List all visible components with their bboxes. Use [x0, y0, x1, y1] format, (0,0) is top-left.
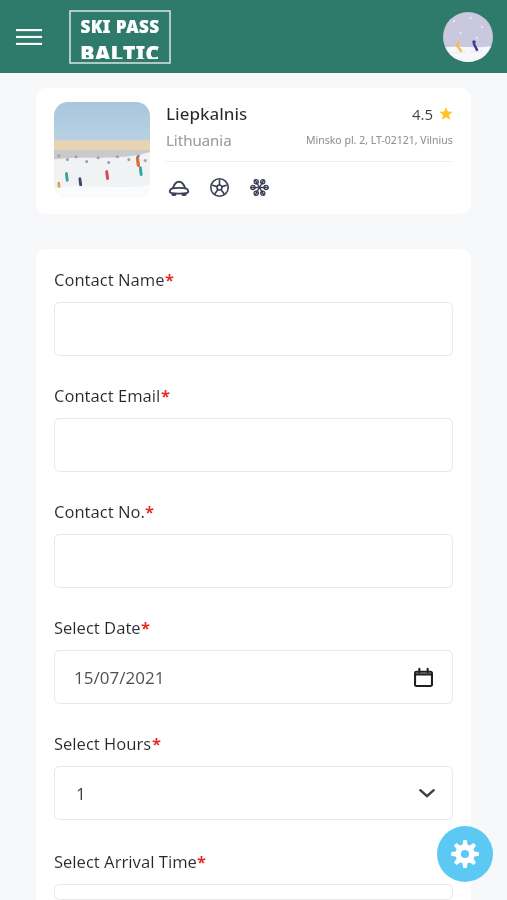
button[interactable]: Snow making	[246, 174, 272, 200]
staticText: Lithuania	[166, 130, 232, 150]
staticText: *	[161, 384, 170, 406]
staticText: *	[145, 500, 154, 522]
staticText: SKI PASS	[80, 15, 160, 38]
button[interactable]	[54, 534, 453, 588]
staticText: *	[197, 850, 206, 872]
staticText: *	[152, 732, 161, 754]
button[interactable]: Equipment rental	[206, 174, 232, 200]
staticText: Contact No.	[54, 500, 145, 522]
staticText: 15/07/2021	[74, 666, 165, 689]
button[interactable]	[54, 302, 453, 356]
button[interactable]: Settings	[437, 826, 493, 882]
button[interactable]: 1	[54, 766, 453, 820]
staticText: *	[165, 268, 174, 290]
button[interactable]: Parking	[166, 174, 192, 200]
button[interactable]: Ski Pass Baltics home	[70, 11, 170, 63]
staticText: Liepkalnis	[166, 102, 248, 125]
button[interactable]: 15/07/2021	[54, 650, 453, 704]
staticText: 1	[76, 782, 86, 805]
button[interactable]	[54, 884, 453, 900]
staticText: Select Hours	[54, 732, 152, 754]
staticText: Select Arrival Time	[54, 850, 197, 872]
staticText: 4.5	[412, 104, 434, 124]
button[interactable]: Liepkalnis	[36, 88, 471, 214]
staticText: Contact Email	[54, 384, 161, 406]
button[interactable]: Profile	[443, 12, 493, 62]
staticText: Minsko pl. 2, LT-02121, Vilnius	[306, 133, 453, 147]
staticText: BALTICS	[74, 39, 166, 59]
staticText: Contact Name	[54, 268, 165, 290]
button[interactable]	[54, 418, 453, 472]
staticText: Select Date	[54, 616, 141, 638]
button[interactable]: Open navigation menu	[10, 18, 48, 56]
staticText: *	[141, 616, 150, 638]
